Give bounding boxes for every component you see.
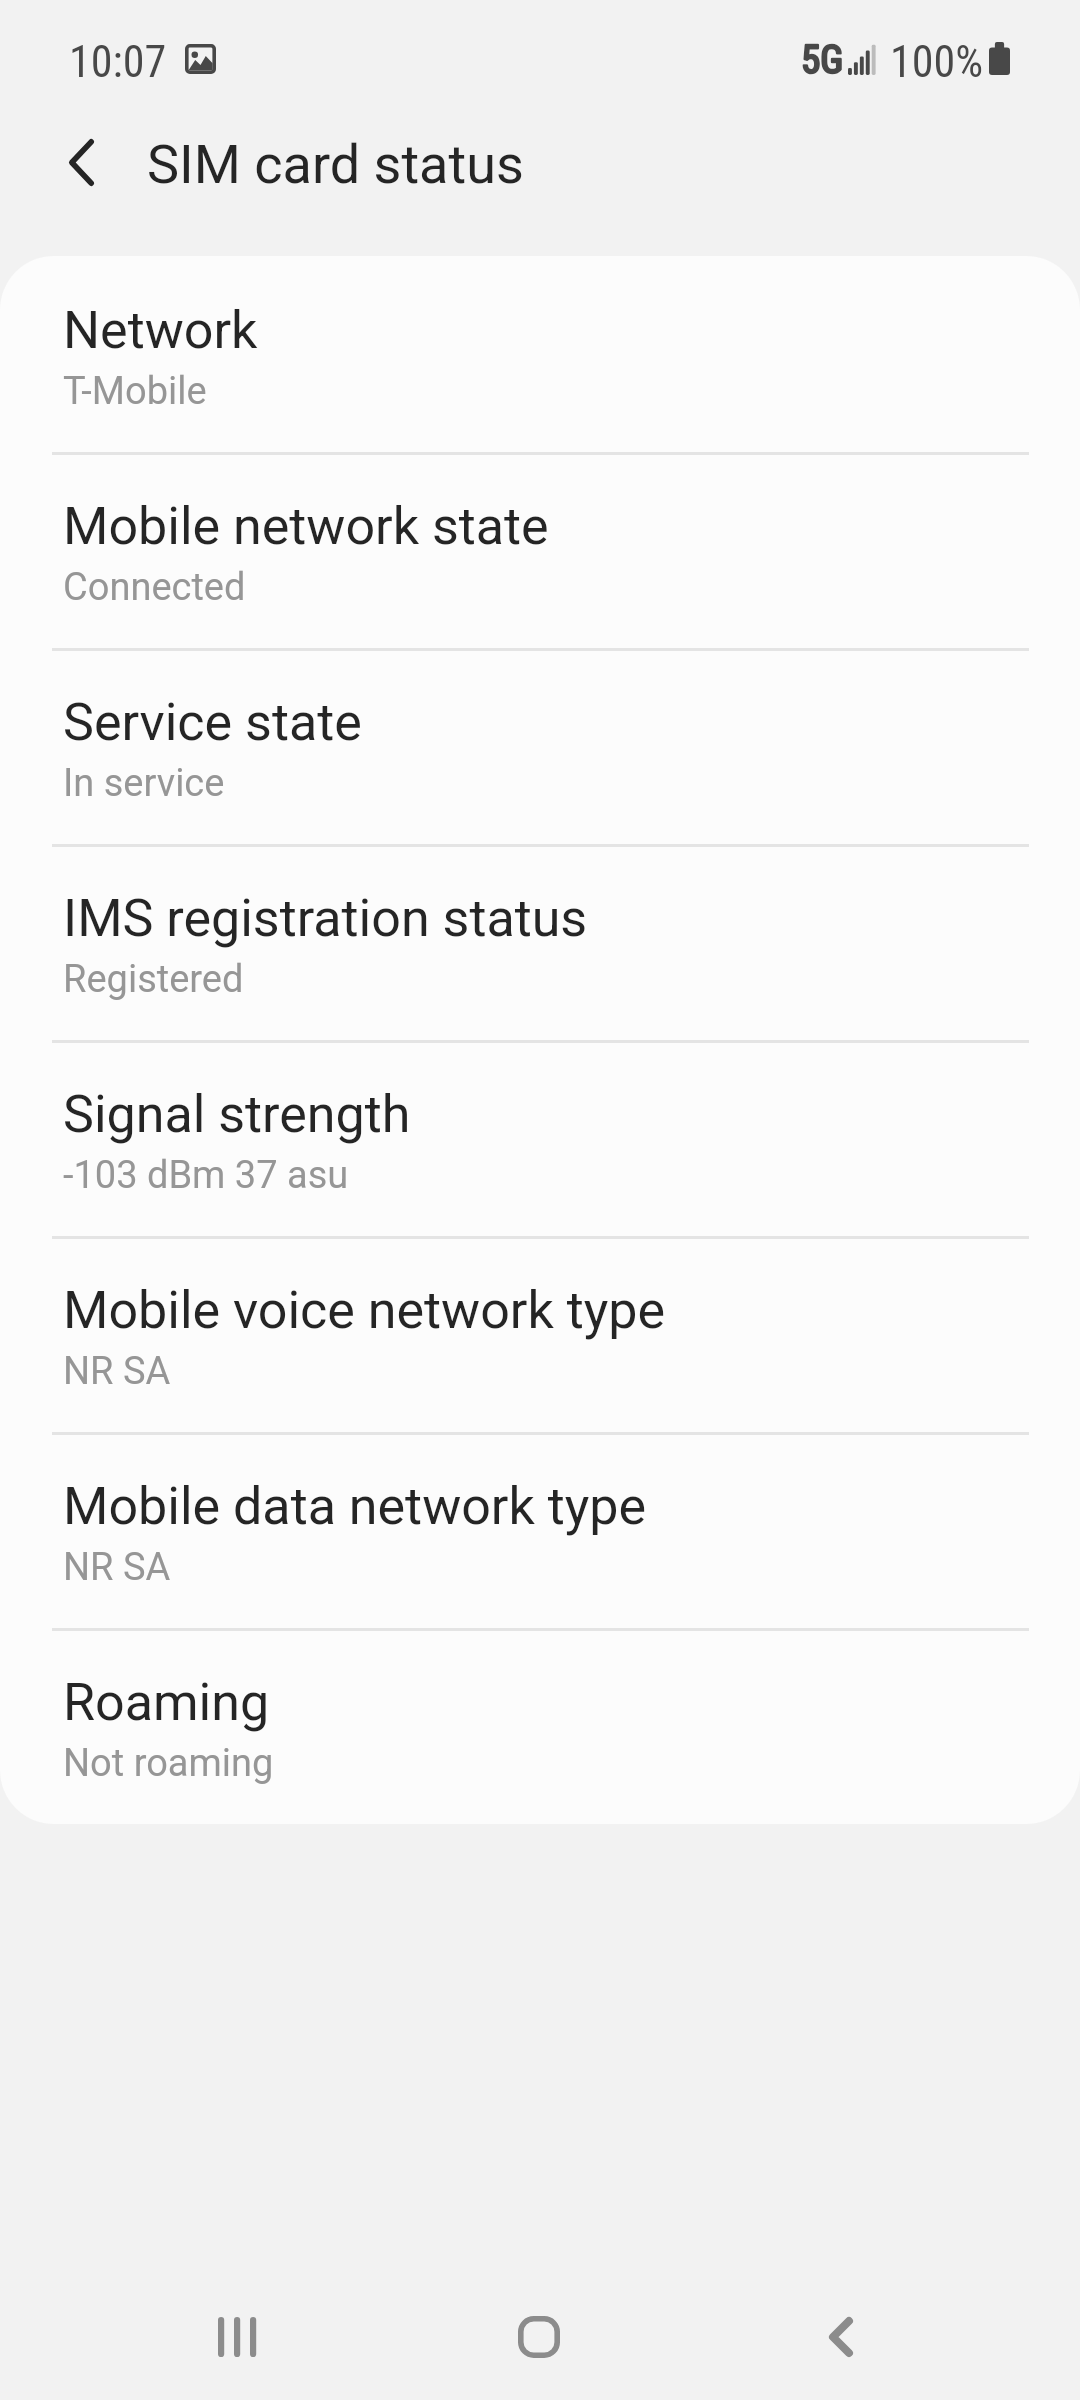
- button[interactable]: Mobile network state: [0, 452, 1080, 648]
- staticText: 5G: [801, 37, 844, 83]
- button[interactable]: Mobile data network type: [0, 1432, 1080, 1628]
- staticText: NR SA: [63, 1545, 171, 1590]
- staticText: In service: [63, 761, 225, 806]
- button[interactable]: Mobile voice network type: [0, 1236, 1080, 1432]
- staticText: Connected: [63, 565, 246, 610]
- button[interactable]: Roaming: [0, 1628, 1080, 1824]
- staticText: Roaming: [63, 1672, 270, 1733]
- button[interactable]: Service state: [0, 648, 1080, 844]
- staticText: Mobile data network type: [63, 1476, 647, 1537]
- staticText: -103 dBm 37 asu: [63, 1153, 349, 1198]
- staticText: NR SA: [63, 1349, 171, 1394]
- staticText: 10:07: [69, 36, 167, 88]
- staticText: Not roaming: [63, 1741, 274, 1786]
- button[interactable]: Signal strength: [0, 1040, 1080, 1236]
- button[interactable]: Network: [0, 256, 1080, 452]
- button[interactable]: Recent apps: [167, 2274, 307, 2400]
- staticText: Service state: [63, 692, 362, 753]
- staticText: 100%: [890, 36, 984, 88]
- button[interactable]: IMS registration status: [0, 844, 1080, 1040]
- button[interactable]: Home: [469, 2274, 609, 2400]
- staticText: Mobile network state: [63, 496, 549, 557]
- staticText: T-Mobile: [63, 369, 207, 414]
- button[interactable]: Back: [771, 2274, 911, 2400]
- button[interactable]: Navigate up: [37, 118, 125, 206]
- staticText: Signal strength: [63, 1084, 411, 1145]
- staticText: IMS registration status: [63, 888, 588, 949]
- staticText: Registered: [63, 957, 244, 1002]
- staticText: Network: [63, 300, 258, 361]
- staticText: Mobile voice network type: [63, 1280, 666, 1341]
- staticText: SIM card status: [147, 133, 524, 196]
- staticText: 5G: [801, 37, 844, 83]
